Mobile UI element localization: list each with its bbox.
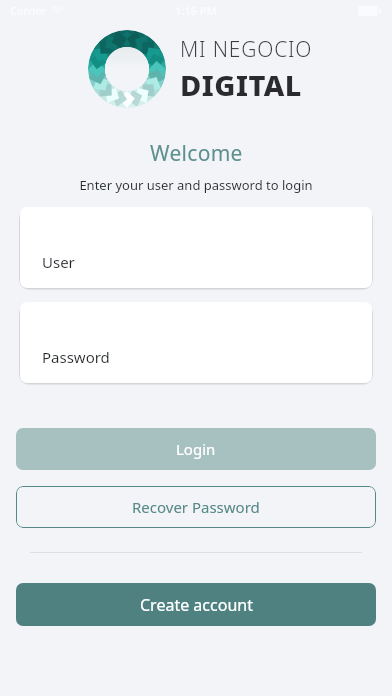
staticText: DIGITAL <box>180 65 302 104</box>
other: Mi Negocio Digital logo <box>88 30 166 108</box>
button[interactable]: Password <box>20 302 372 383</box>
staticText: Password <box>42 347 110 367</box>
staticText: Create account <box>140 594 253 616</box>
staticText: MI NEGOCIO <box>180 35 313 64</box>
button[interactable]: Recover Password <box>16 486 376 528</box>
staticText: Enter your user and password to login <box>79 176 313 194</box>
staticText: Recover Password <box>132 497 260 517</box>
button[interactable]: Create account <box>16 583 376 626</box>
staticText: User <box>42 252 75 272</box>
button[interactable]: Login <box>16 428 376 470</box>
button[interactable]: User <box>20 207 372 288</box>
staticText: Login <box>176 439 216 459</box>
staticText: Welcome <box>150 139 243 168</box>
